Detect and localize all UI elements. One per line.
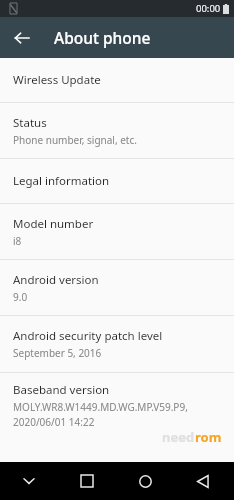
staticText: MOLY.WR8.W1449.MD.WG.MP.V59.P9,	[13, 400, 188, 414]
staticText: Android security patch level	[13, 328, 163, 344]
staticText: About phone	[54, 27, 151, 48]
button[interactable]: Hide	[0, 462, 58, 500]
staticText: 00:00	[196, 2, 221, 15]
staticText: Phone number, signal, etc.	[13, 133, 137, 147]
staticText: Android version	[13, 272, 99, 288]
button[interactable]: Home	[116, 462, 174, 500]
staticText: Wireless Update	[13, 72, 101, 88]
staticText: September 5, 2016	[13, 346, 102, 360]
button[interactable]: Model number	[0, 204, 234, 259]
button[interactable]: Back	[8, 24, 36, 52]
button[interactable]: Recent apps	[58, 462, 116, 500]
staticText: Baseband version	[13, 382, 110, 398]
button[interactable]: Wireless Update	[0, 58, 234, 102]
staticText: Legal information	[13, 173, 110, 189]
staticText: i8	[13, 234, 22, 248]
staticText: Model number	[13, 216, 94, 232]
staticText: need	[162, 428, 195, 446]
staticText: rom	[195, 428, 222, 446]
button[interactable]: Legal information	[0, 159, 234, 203]
button[interactable]: Back	[174, 462, 232, 500]
button[interactable]: Android version	[0, 260, 234, 315]
staticText: Status	[13, 115, 47, 131]
button[interactable]: Android security patch level	[0, 316, 234, 372]
staticText: 2020/06/01 14:22	[13, 415, 95, 429]
button[interactable]: Status	[0, 103, 234, 158]
staticText: 9.0	[13, 290, 28, 304]
button[interactable]: Baseband version	[0, 373, 234, 441]
